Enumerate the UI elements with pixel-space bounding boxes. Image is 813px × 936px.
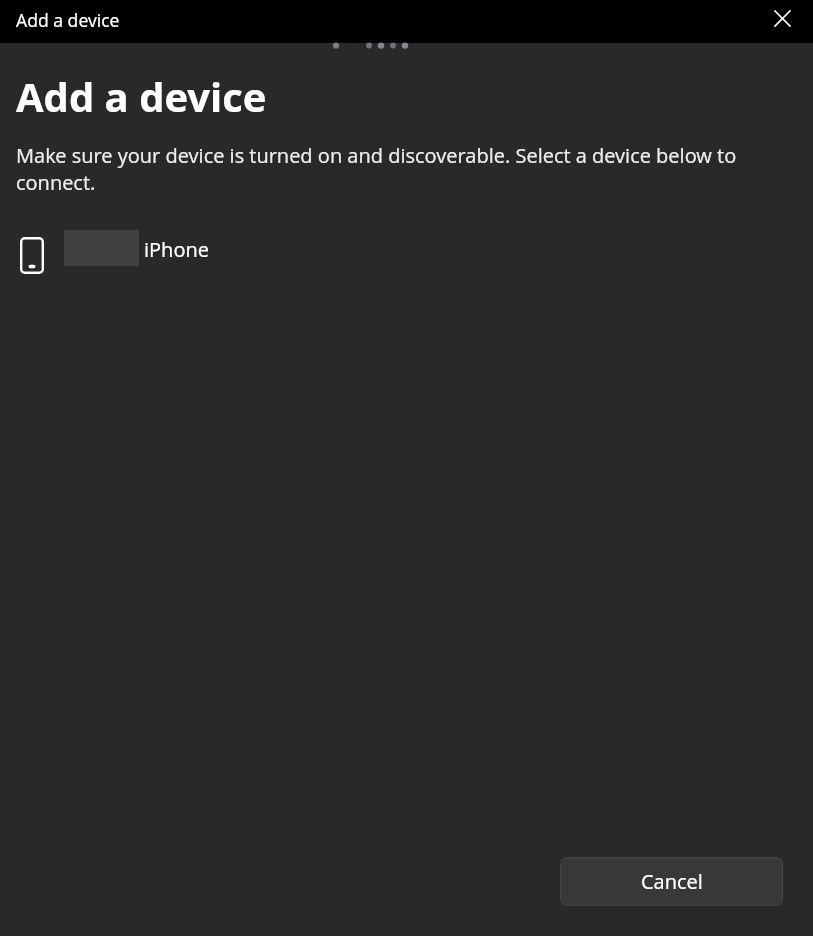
- staticText: Make sure your device is turned on and d…: [16, 142, 760, 196]
- staticText: Cancel: [641, 868, 703, 895]
- button[interactable]: Cancel: [560, 857, 783, 906]
- staticText: Add a device: [16, 8, 120, 32]
- staticText: Add a device: [16, 69, 267, 123]
- button[interactable]: Close: [759, 0, 805, 36]
- button[interactable]: iPhone: [0, 222, 813, 280]
- staticText: iPhone: [144, 236, 209, 263]
